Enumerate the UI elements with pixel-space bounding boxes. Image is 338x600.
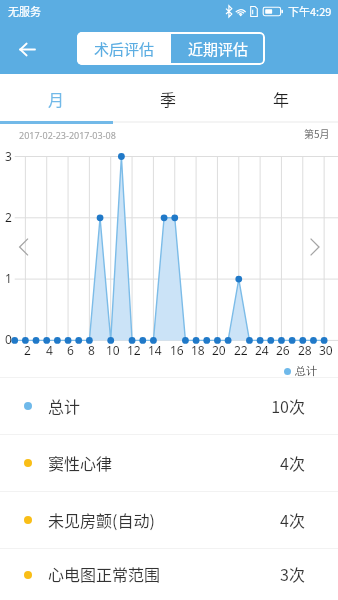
staticText: 总计 [295, 364, 317, 378]
button[interactable]: 窦性心律 [0, 435, 338, 491]
staticText: 28 [298, 342, 312, 358]
staticText: 18 [191, 342, 205, 358]
staticText: 术后评估 [94, 38, 155, 60]
button[interactable]: 季 [112, 74, 225, 121]
staticText: 心电图正常范围 [48, 562, 161, 585]
staticText: 年 [273, 87, 290, 110]
button[interactable]: 术后评估 [77, 32, 171, 65]
staticText: 3 [5, 148, 12, 164]
staticText: 总计 [48, 394, 81, 417]
staticText: 月 [48, 87, 65, 110]
staticText: 无服务 [8, 3, 41, 19]
button[interactable]: Back [11, 34, 42, 65]
staticText: 2017-02-23-2017-03-08 [19, 129, 116, 141]
staticText: 下午4:29 [288, 3, 332, 19]
staticText: 3次 [280, 562, 305, 585]
staticText: 未见房颤(自动) [48, 508, 155, 531]
staticText: 24 [255, 342, 269, 358]
staticText: 4次 [280, 451, 305, 474]
staticText: 10 [106, 342, 120, 358]
staticText: 1 [5, 270, 12, 286]
staticText: 窦性心律 [48, 451, 113, 474]
button[interactable]: 近期评估 [171, 32, 265, 65]
staticText: 14 [148, 342, 162, 358]
staticText: 26 [276, 342, 290, 358]
staticText: 30 [319, 342, 333, 358]
staticText: 12 [127, 342, 141, 358]
staticText: 季 [160, 87, 177, 110]
button[interactable]: 总计 [0, 378, 338, 434]
staticText: 2 [24, 342, 31, 358]
staticText: 4次 [280, 508, 305, 531]
staticText: 8 [88, 342, 95, 358]
staticText: 6 [67, 342, 74, 358]
staticText: 22 [234, 342, 248, 358]
staticText: 第5月 [304, 126, 330, 140]
staticText: 近期评估 [188, 38, 249, 60]
staticText: 2 [5, 209, 12, 225]
staticText: 0 [5, 331, 12, 347]
button[interactable]: 月 [0, 74, 112, 121]
staticText: 16 [170, 342, 184, 358]
button[interactable]: Previous [14, 234, 32, 260]
button[interactable]: 未见房颤(自动) [0, 492, 338, 548]
staticText: 4 [46, 342, 53, 358]
button[interactable]: 心电图正常范围 [0, 549, 338, 600]
staticText: 10次 [271, 394, 305, 417]
button[interactable]: Next [305, 234, 323, 260]
staticText: 20 [212, 342, 226, 358]
button[interactable]: 年 [225, 74, 338, 121]
